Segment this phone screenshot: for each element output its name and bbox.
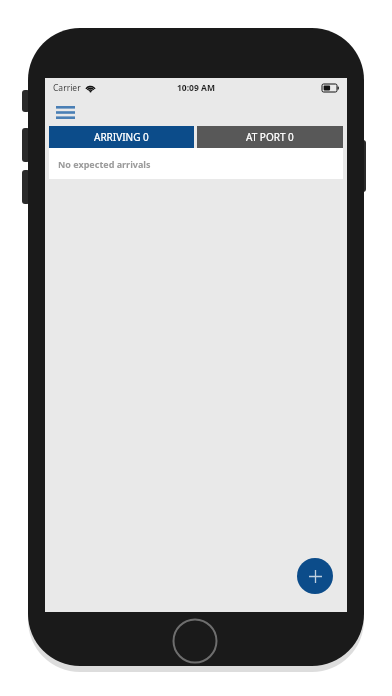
button[interactable]: ARRIVING 0 <box>49 126 194 148</box>
button[interactable]: No expected arrivals <box>49 148 343 179</box>
button[interactable]: Add <box>297 558 333 594</box>
staticText: 10:09 AM <box>177 82 215 94</box>
staticText: AT PORT 0 <box>246 130 294 144</box>
button[interactable]: Open navigation menu <box>51 98 79 126</box>
staticText: ARRIVING 0 <box>94 130 149 144</box>
staticText: No expected arrivals <box>58 158 151 170</box>
staticText: Carrier <box>53 82 81 94</box>
button[interactable]: AT PORT 0 <box>197 126 343 148</box>
